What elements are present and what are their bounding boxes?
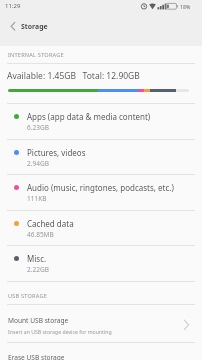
button[interactable]: Cached data [0,210,202,246]
button[interactable] [3,16,23,36]
staticText: Pictures, videos [27,147,86,158]
staticText: Cached data [27,218,74,229]
button[interactable]: Apps (app data & media content) [0,103,202,139]
staticText: INTERNAL STORAGE [8,51,64,59]
staticText: Erase USB storage [8,353,65,360]
button[interactable]: Pictures, videos [0,139,202,175]
button[interactable]: Audio (music, ringtones, podcasts, etc.) [0,174,202,210]
staticText: Available: 1.45GB Total: 12.90GB [7,70,140,82]
staticText: USB STORAGE [8,292,48,300]
button[interactable]: Misc. [0,245,202,281]
staticText: Misc. [27,253,47,264]
staticText: 6.23GB [27,123,49,132]
staticText: 18% [180,3,191,10]
staticText: Insert an USB storage device for mountin… [8,328,112,335]
button[interactable]: Mount USB storage [0,304,202,342]
staticText: 2.22GB [27,265,49,274]
staticText: 11:29 [5,2,21,10]
staticText: Apps (app data & media content) [27,111,151,122]
staticText: Audio (music, ringtones, podcasts, etc.) [27,182,174,193]
button[interactable]: Erase USB storage [0,342,202,360]
staticText: Mount USB storage [8,316,69,325]
staticText: Storage [21,22,48,31]
staticText: 2.94GB [27,159,49,168]
staticText: 46.85MB [27,230,54,239]
staticText: 111KB [27,194,47,203]
